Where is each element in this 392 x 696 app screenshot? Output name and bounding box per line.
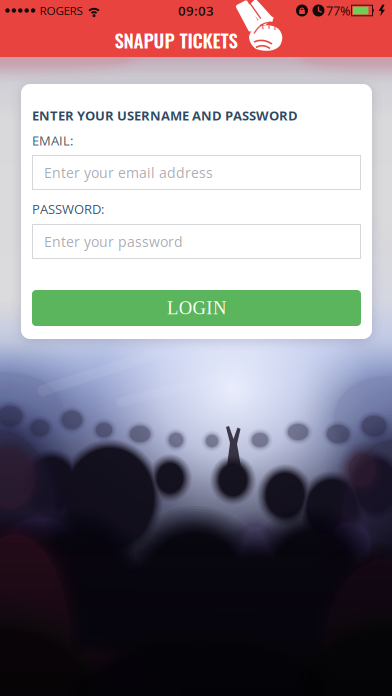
button[interactable]: LOGIN <box>32 290 361 326</box>
staticText: EMAIL: <box>32 131 73 149</box>
staticText: 77% <box>326 2 350 19</box>
staticText: Enter your password <box>44 232 183 251</box>
staticText: 09:03 <box>178 1 214 20</box>
button[interactable]: Enter your password <box>32 224 361 259</box>
staticText: SNAPUP TICKETS <box>114 26 237 54</box>
staticText: ROGERS <box>39 3 82 18</box>
staticText: LOGIN <box>167 298 226 318</box>
staticText: Enter your email address <box>44 163 213 182</box>
staticText: ENTER YOUR USERNAME AND PASSWORD <box>32 106 298 124</box>
button[interactable]: Enter your email address <box>32 155 361 190</box>
staticText: PASSWORD: <box>32 200 104 218</box>
